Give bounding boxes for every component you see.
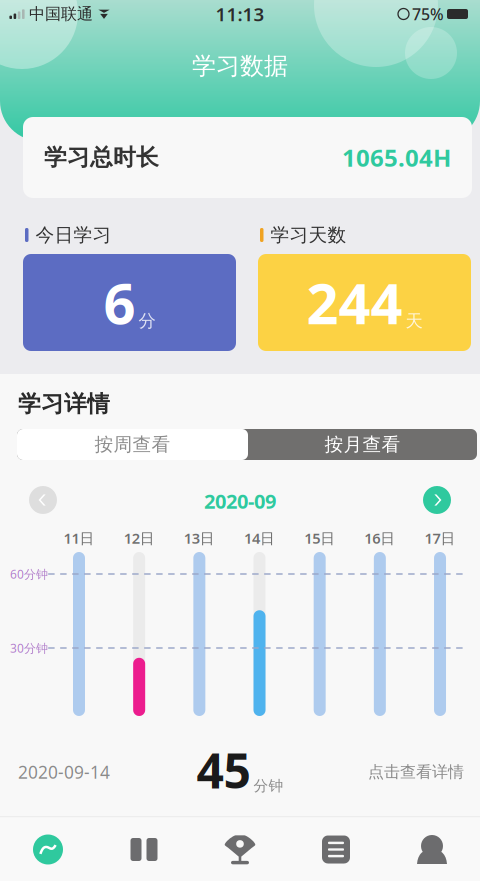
button[interactable]: Profile (384, 818, 480, 881)
staticText: 点击查看详情 (368, 762, 464, 782)
staticText: 11日 (63, 528, 94, 548)
staticText: 按周查看 (94, 433, 170, 456)
staticText: 12日 (124, 528, 155, 548)
staticText: 中国联通 (29, 4, 93, 24)
button[interactable]: Records (288, 818, 384, 881)
staticText: 14日 (244, 528, 275, 548)
staticText: 6 (103, 265, 135, 340)
staticText: 2020-09-14 (18, 760, 110, 783)
staticText: 学习天数 (270, 223, 346, 246)
staticText: 17日 (424, 528, 455, 548)
staticText: 60分钟 (10, 566, 48, 582)
button[interactable]: Previous month (29, 486, 57, 514)
staticText: 今日学习 (35, 223, 111, 246)
staticText: 学习详情 (18, 390, 110, 418)
staticText: 1065.04H (342, 142, 451, 173)
staticText: 15日 (304, 528, 335, 548)
button[interactable]: 按周查看 (17, 429, 248, 460)
staticText: 分钟 (253, 777, 283, 795)
button[interactable]: Next month (423, 486, 451, 514)
button[interactable]: 按月查看 (248, 429, 477, 460)
staticText: 45 (196, 738, 250, 802)
staticText: 75% (412, 3, 444, 25)
button[interactable]: Courses (96, 818, 192, 881)
button[interactable]: Awards (192, 818, 288, 881)
staticText: 天 (405, 310, 422, 332)
staticText: 学习数据 (192, 51, 288, 81)
staticText: 按月查看 (324, 433, 400, 456)
staticText: 11:13 (215, 2, 264, 26)
staticText: 13日 (184, 528, 215, 548)
staticText: 2020-09 (204, 488, 276, 514)
staticText: 16日 (364, 528, 395, 548)
staticText: 分 (138, 310, 155, 332)
staticText: 学习总时长 (44, 144, 159, 171)
staticText: 30分钟 (10, 640, 48, 656)
staticText: 244 (306, 265, 402, 340)
button[interactable]: 点击查看详情 (340, 762, 464, 782)
button[interactable]: Statistics (0, 818, 96, 881)
